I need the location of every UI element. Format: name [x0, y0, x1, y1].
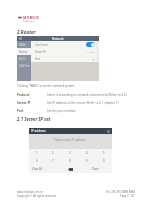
button[interactable]: 9: [78, 157, 95, 165]
staticText: .: [53, 167, 54, 171]
button[interactable]: Port: [31, 55, 99, 62]
staticText: 4: [86, 151, 88, 155]
staticText: www.mobius.com.cn: [17, 190, 44, 194]
staticText: Port: [35, 57, 41, 61]
button[interactable]: LAN Set: [17, 62, 31, 70]
button[interactable]: Server: [17, 48, 31, 55]
staticText: 10: [92, 57, 95, 60]
staticText: MOBIUS: [23, 15, 40, 20]
staticText: Wi-Fi: [19, 57, 26, 61]
staticText: Clicking “WAN” to set the network param.: [17, 84, 76, 88]
button[interactable]: 3: [61, 149, 78, 157]
staticText: Copyright © All rights reserved: [17, 194, 56, 198]
staticText: IP address: [31, 129, 46, 133]
staticText: 9: [86, 159, 88, 163]
staticText: 6: [36, 159, 38, 163]
staticText: 2.Router: [17, 29, 36, 35]
button[interactable]: Toggle: [86, 42, 95, 47]
button[interactable]: 6: [29, 157, 45, 165]
staticText: Done: [92, 167, 99, 171]
staticText: 7: [52, 159, 54, 163]
staticText: 1.2.3.4: [87, 50, 95, 53]
staticText: Use Server: [35, 43, 49, 47]
staticText: 2: [52, 151, 54, 155]
staticText: LAN Set: [19, 64, 30, 68]
button[interactable]: 2: [45, 149, 61, 157]
button[interactable]: 4: [78, 149, 95, 157]
staticText: Select it according to network environme…: [47, 93, 128, 97]
button[interactable]: Use Server: [31, 41, 99, 48]
staticText: WAN: [19, 43, 26, 47]
button[interactable]: 1: [29, 149, 45, 157]
staticText: 科技有限公司: [23, 20, 35, 22]
button[interactable]: Wi-Fi: [17, 55, 31, 62]
staticText: Network: [52, 37, 64, 41]
button[interactable]: Done: [79, 165, 112, 173]
staticText: Port: [17, 109, 47, 113]
button[interactable]: 7: [45, 157, 61, 165]
button[interactable]: 5: [95, 149, 112, 157]
staticText: 8: [69, 159, 71, 163]
staticText: Please input IP address.: [54, 138, 87, 142]
staticText: 2.1 Server IP set: [17, 116, 51, 122]
staticText: 3: [69, 151, 71, 155]
staticText: 0: [103, 159, 105, 163]
button[interactable]: Clear All: [29, 165, 45, 173]
staticText: Page 2 / 20: [120, 194, 135, 198]
staticText: Server IP: [35, 50, 46, 54]
staticText: Set IP address of the server (Refer to 2…: [47, 101, 120, 105]
button[interactable]: 0: [95, 157, 112, 165]
staticText: Set the port number.: [47, 109, 76, 113]
staticText: Server: [19, 50, 28, 54]
button[interactable]: Server IP: [31, 48, 99, 55]
staticText: Tel: +86-755-8888 8888: [106, 190, 135, 194]
staticText: Protocol: [17, 93, 47, 97]
button[interactable]: Back: [19, 37, 22, 40]
button[interactable]: Backspace: [62, 165, 79, 173]
staticText: 1: [36, 151, 38, 155]
staticText: Server IP: [17, 101, 47, 105]
staticText: 5: [103, 151, 105, 155]
button[interactable]: 8: [61, 157, 78, 165]
button[interactable]: WAN: [17, 41, 31, 48]
staticText: Clear All: [32, 167, 42, 171]
